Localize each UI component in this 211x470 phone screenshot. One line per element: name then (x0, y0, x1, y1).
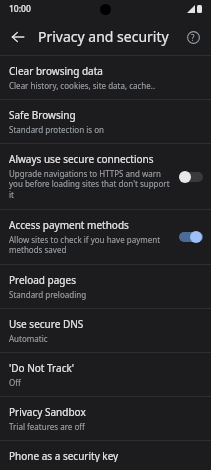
staticText: Clear history, cookies, site data, cache… (9, 80, 156, 91)
staticText: Allow sites to check if you have payment… (9, 234, 171, 256)
button[interactable]: Always use secure connections (0, 144, 211, 209)
staticText: Privacy Sandbox (9, 405, 86, 419)
staticText: Phone as a security key (9, 449, 119, 462)
button[interactable]: Preload pages (0, 265, 211, 308)
button[interactable]: Use secure DNS (0, 309, 211, 352)
staticText: Privacy and security (38, 27, 169, 46)
staticText: Access payment methods (9, 218, 129, 232)
button[interactable]: Clear browsing data (0, 56, 211, 99)
staticText: 'Do Not Track' (9, 361, 75, 375)
staticText: Automatic (9, 333, 48, 344)
button[interactable]: Safe Browsing (0, 100, 211, 143)
staticText: Upgrade navigations to HTTPS and warn yo… (9, 168, 171, 201)
staticText: Always use secure connections (9, 152, 154, 166)
button[interactable]: Phone as a security key (0, 441, 211, 470)
staticText: Use secure DNS (9, 317, 84, 331)
staticText: Standard preloading (9, 289, 87, 300)
button[interactable]: Privacy Sandbox (0, 397, 211, 440)
button[interactable]: Help (180, 24, 206, 50)
staticText: Clear browsing data (9, 64, 103, 78)
staticText: 10:00 (9, 3, 31, 15)
button[interactable]: 'Do Not Track' (0, 353, 211, 396)
staticText: Off (9, 377, 21, 388)
staticText: ? (191, 32, 195, 43)
staticText: Standard protection is on (9, 124, 104, 135)
staticText: Trial features are off (9, 421, 85, 432)
button[interactable]: Back (4, 23, 32, 51)
staticText: Safe Browsing (9, 108, 76, 122)
staticText: Preload pages (9, 273, 76, 287)
button[interactable]: Access payment methods (0, 210, 211, 264)
